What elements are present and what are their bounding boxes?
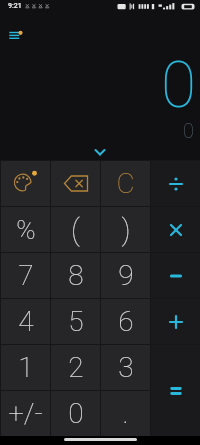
button[interactable]: 9 bbox=[101, 253, 150, 298]
button[interactable]: 0 bbox=[51, 391, 100, 436]
button[interactable]: 2 bbox=[51, 345, 100, 390]
button[interactable]: 1 bbox=[1, 345, 50, 390]
button[interactable]: Equals bbox=[151, 345, 200, 436]
staticText: ) bbox=[121, 212, 131, 247]
button[interactable]: Divide bbox=[151, 161, 200, 206]
button[interactable]: Decimal point bbox=[101, 391, 150, 436]
button[interactable]: 3 bbox=[101, 345, 150, 390]
button[interactable]: 5 bbox=[51, 299, 100, 344]
staticText: C bbox=[116, 167, 135, 200]
staticText: 7 bbox=[18, 259, 34, 292]
staticText: 0 bbox=[68, 397, 84, 430]
button[interactable]: 6 bbox=[101, 299, 150, 344]
button[interactable]: 4 bbox=[1, 299, 50, 344]
button[interactable]: Plus minus bbox=[1, 391, 50, 436]
staticText: % bbox=[16, 215, 36, 245]
button[interactable]: Backspace bbox=[51, 161, 100, 206]
staticText: 2 bbox=[68, 351, 84, 384]
staticText: 0 bbox=[183, 119, 194, 142]
button[interactable]: Open parenthesis bbox=[51, 207, 100, 252]
staticText: . bbox=[122, 397, 129, 430]
button[interactable]: 7 bbox=[1, 253, 50, 298]
staticText: 3 bbox=[118, 351, 134, 384]
staticText: ( bbox=[71, 212, 80, 247]
staticText: 0 bbox=[161, 48, 197, 123]
button[interactable]: Menu bbox=[5, 26, 27, 42]
staticText: 6 bbox=[118, 305, 134, 338]
button[interactable]: Percent bbox=[1, 207, 50, 252]
staticText: 9 bbox=[118, 259, 134, 292]
button[interactable]: 8 bbox=[51, 253, 100, 298]
staticText: 4 bbox=[18, 305, 34, 338]
button[interactable]: Minus bbox=[151, 253, 200, 298]
button[interactable]: Clear bbox=[101, 161, 150, 206]
staticText: 5 bbox=[68, 305, 84, 338]
button[interactable]: Plus bbox=[151, 299, 200, 344]
button[interactable]: Theme bbox=[1, 161, 50, 206]
staticText: 8 bbox=[68, 259, 84, 292]
button[interactable]: Expand history bbox=[87, 146, 113, 160]
staticText: +/- bbox=[8, 397, 43, 430]
staticText: 9:21 bbox=[8, 2, 22, 10]
button[interactable]: Close parenthesis bbox=[101, 207, 150, 252]
button[interactable]: Multiply bbox=[151, 207, 200, 252]
staticText: 1 bbox=[18, 351, 34, 384]
